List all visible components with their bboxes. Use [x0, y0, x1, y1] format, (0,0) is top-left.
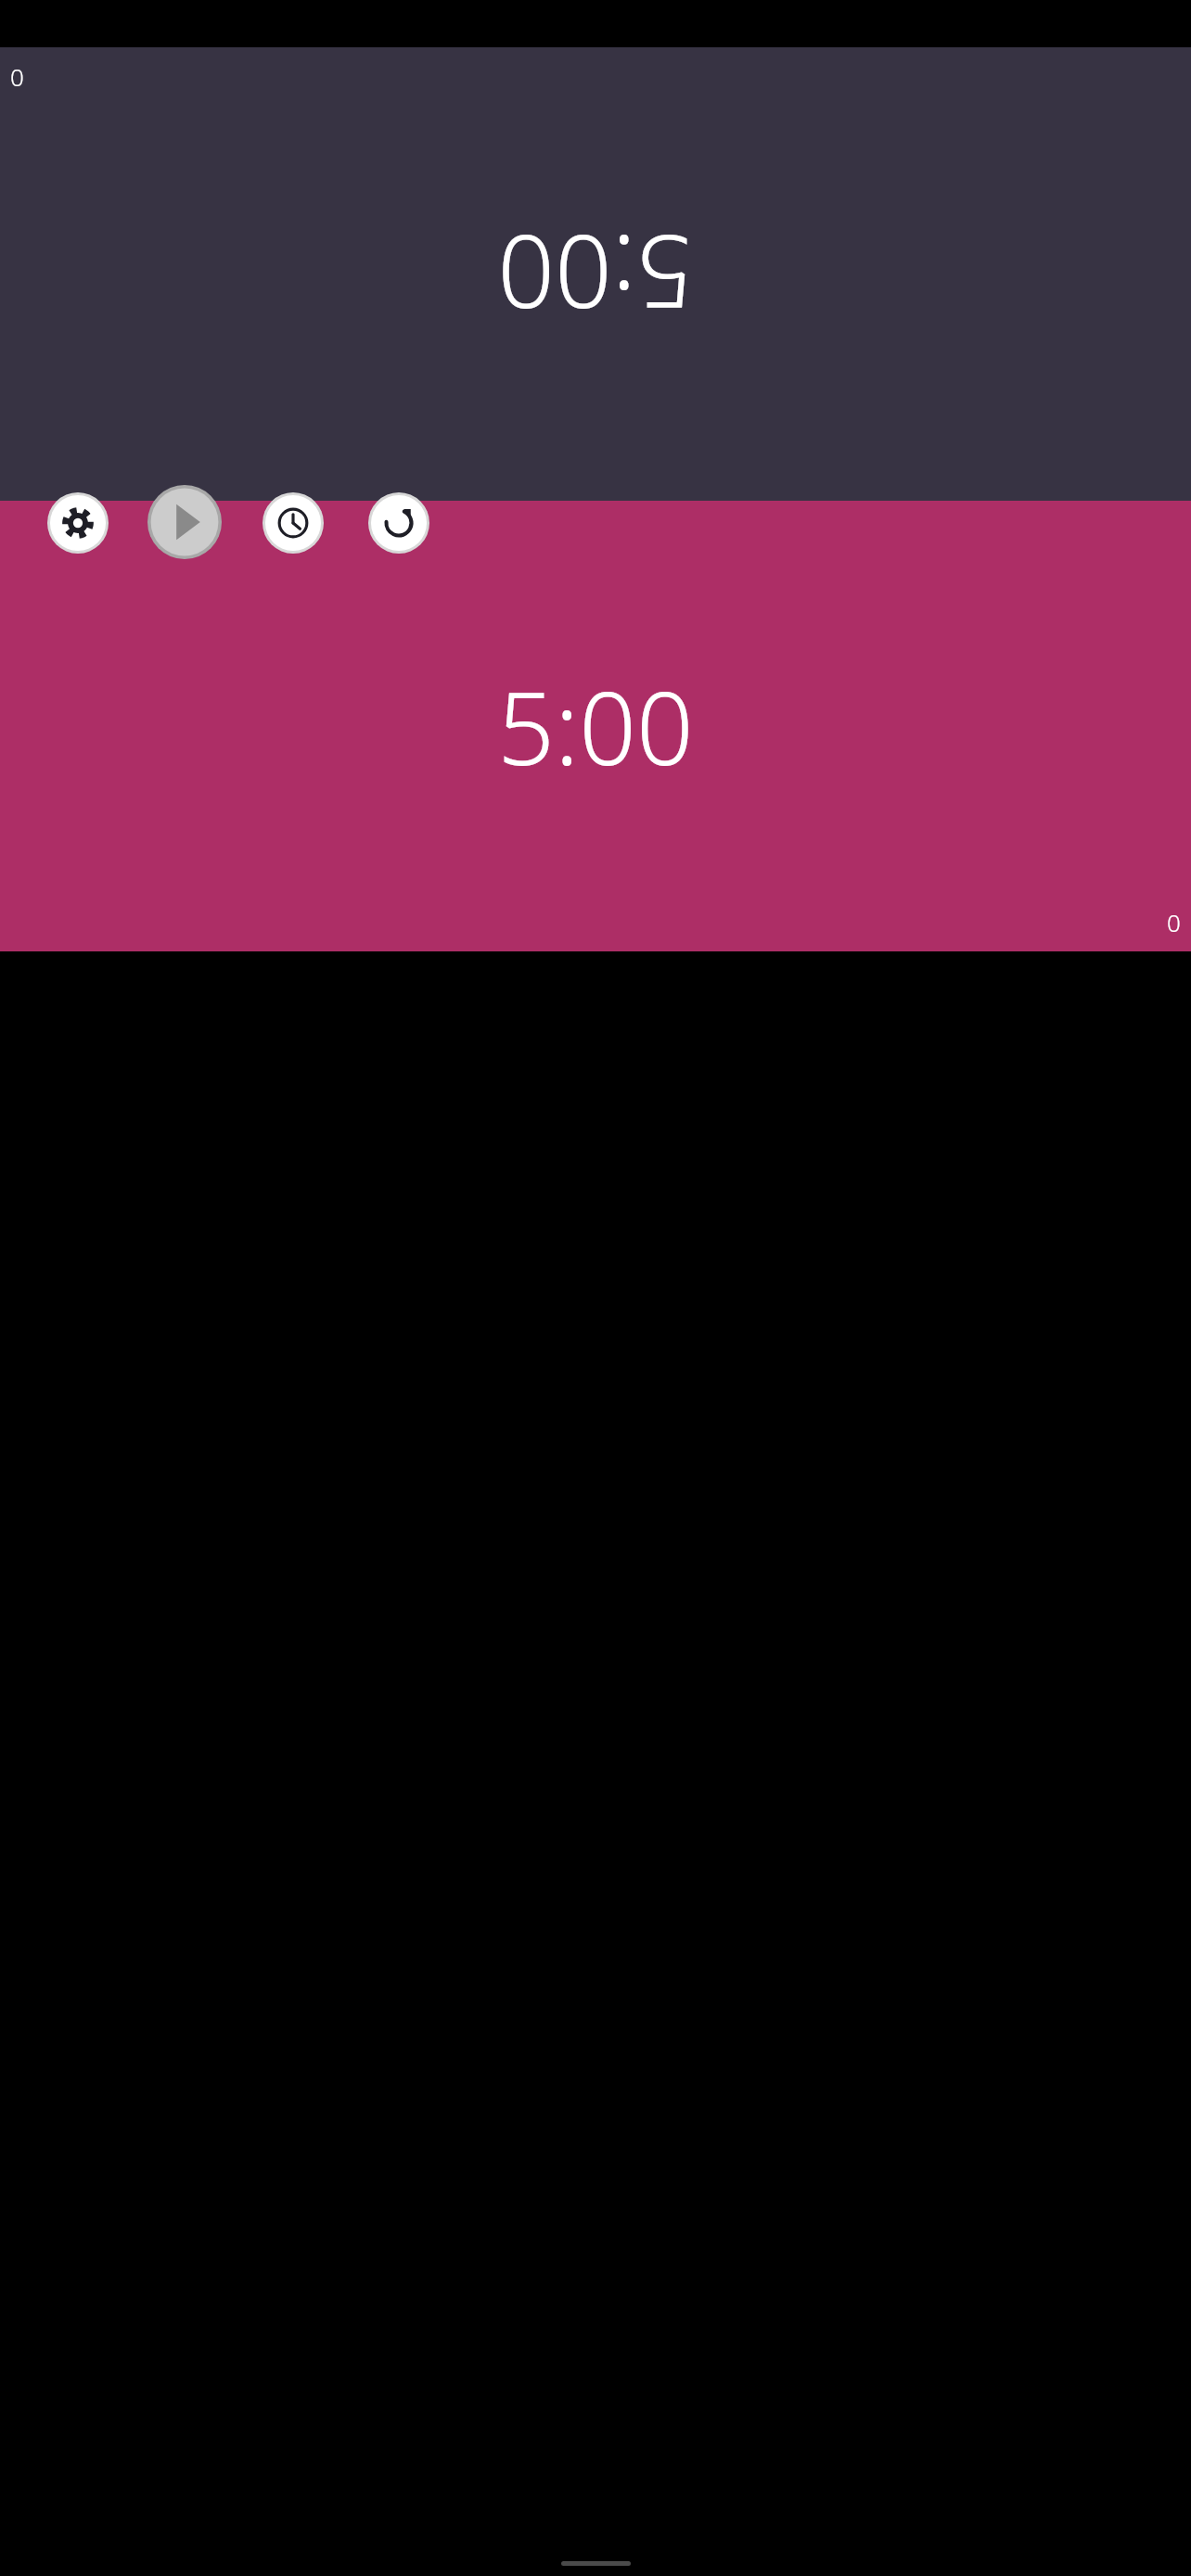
- staticText: 0: [10, 60, 24, 93]
- button[interactable]: 5:00: [0, 47, 1191, 501]
- button[interactable]: Start: [147, 485, 222, 559]
- staticText: 0: [1167, 906, 1181, 938]
- button[interactable]: Time settings: [263, 492, 324, 554]
- button[interactable]: Settings: [47, 492, 109, 554]
- button[interactable]: 5:00: [0, 501, 1191, 951]
- button[interactable]: Reset: [368, 492, 429, 554]
- staticText: 5:00: [497, 206, 694, 342]
- staticText: 5:00: [497, 658, 694, 795]
